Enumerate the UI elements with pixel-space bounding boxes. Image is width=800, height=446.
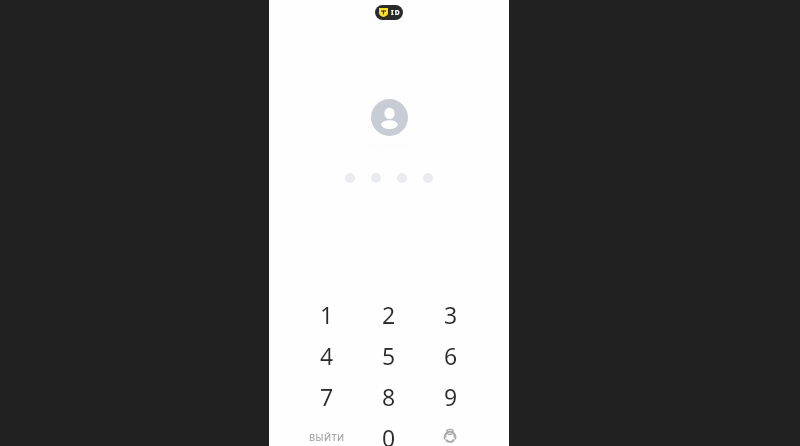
button[interactable]: 6: [420, 335, 482, 376]
button[interactable]: ВЫЙТИ: [296, 417, 358, 446]
staticText: 6: [444, 340, 458, 371]
staticText: 1: [320, 299, 334, 330]
staticText: 7: [320, 381, 334, 412]
button[interactable]: 1: [296, 294, 358, 335]
staticText: 8: [382, 381, 396, 412]
staticText: 5: [382, 340, 396, 371]
button[interactable]: 7: [296, 376, 358, 417]
staticText: 2: [382, 299, 396, 330]
button[interactable]: 4: [296, 335, 358, 376]
button[interactable]: 5: [358, 335, 420, 376]
button[interactable]: Unlock with fingerprint: [420, 417, 482, 446]
staticText: ID: [391, 8, 401, 17]
staticText: ВЫЙТИ: [309, 431, 345, 444]
button[interactable]: 3: [420, 294, 482, 335]
button[interactable]: 0: [358, 417, 420, 446]
staticText: 3: [444, 299, 458, 330]
staticText: 0: [382, 422, 396, 446]
staticText: 9: [444, 381, 458, 412]
button[interactable]: 2: [358, 294, 420, 335]
button[interactable]: 8: [358, 376, 420, 417]
staticText: 4: [320, 340, 334, 371]
button[interactable]: 9: [420, 376, 482, 417]
button[interactable]: Tinkoff ID: [375, 5, 403, 20]
